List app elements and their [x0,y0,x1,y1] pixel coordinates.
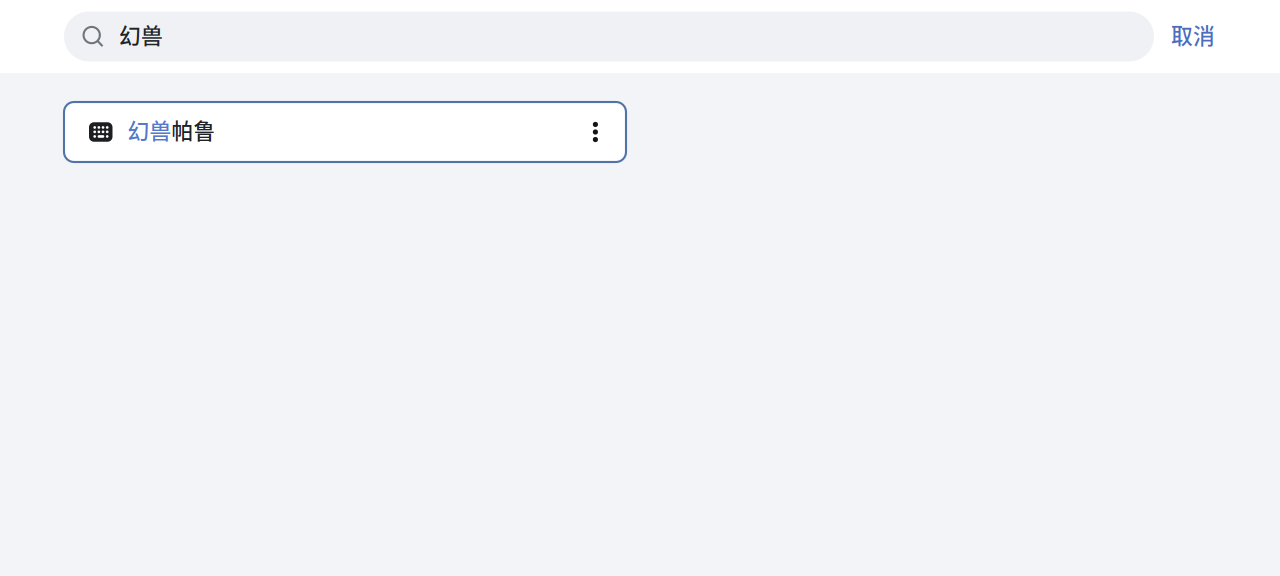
staticText: 取消 [1171,19,1215,50]
button[interactable]: 取消 [1154,11,1237,61]
button[interactable]: More options [581,102,609,162]
staticText: 幻兽 [127,114,171,145]
staticText: 幻兽 [119,19,163,50]
staticText: 帕鲁 [171,114,215,145]
button[interactable]: 幻兽 [64,11,1154,61]
button[interactable]: 幻兽 [64,102,626,162]
